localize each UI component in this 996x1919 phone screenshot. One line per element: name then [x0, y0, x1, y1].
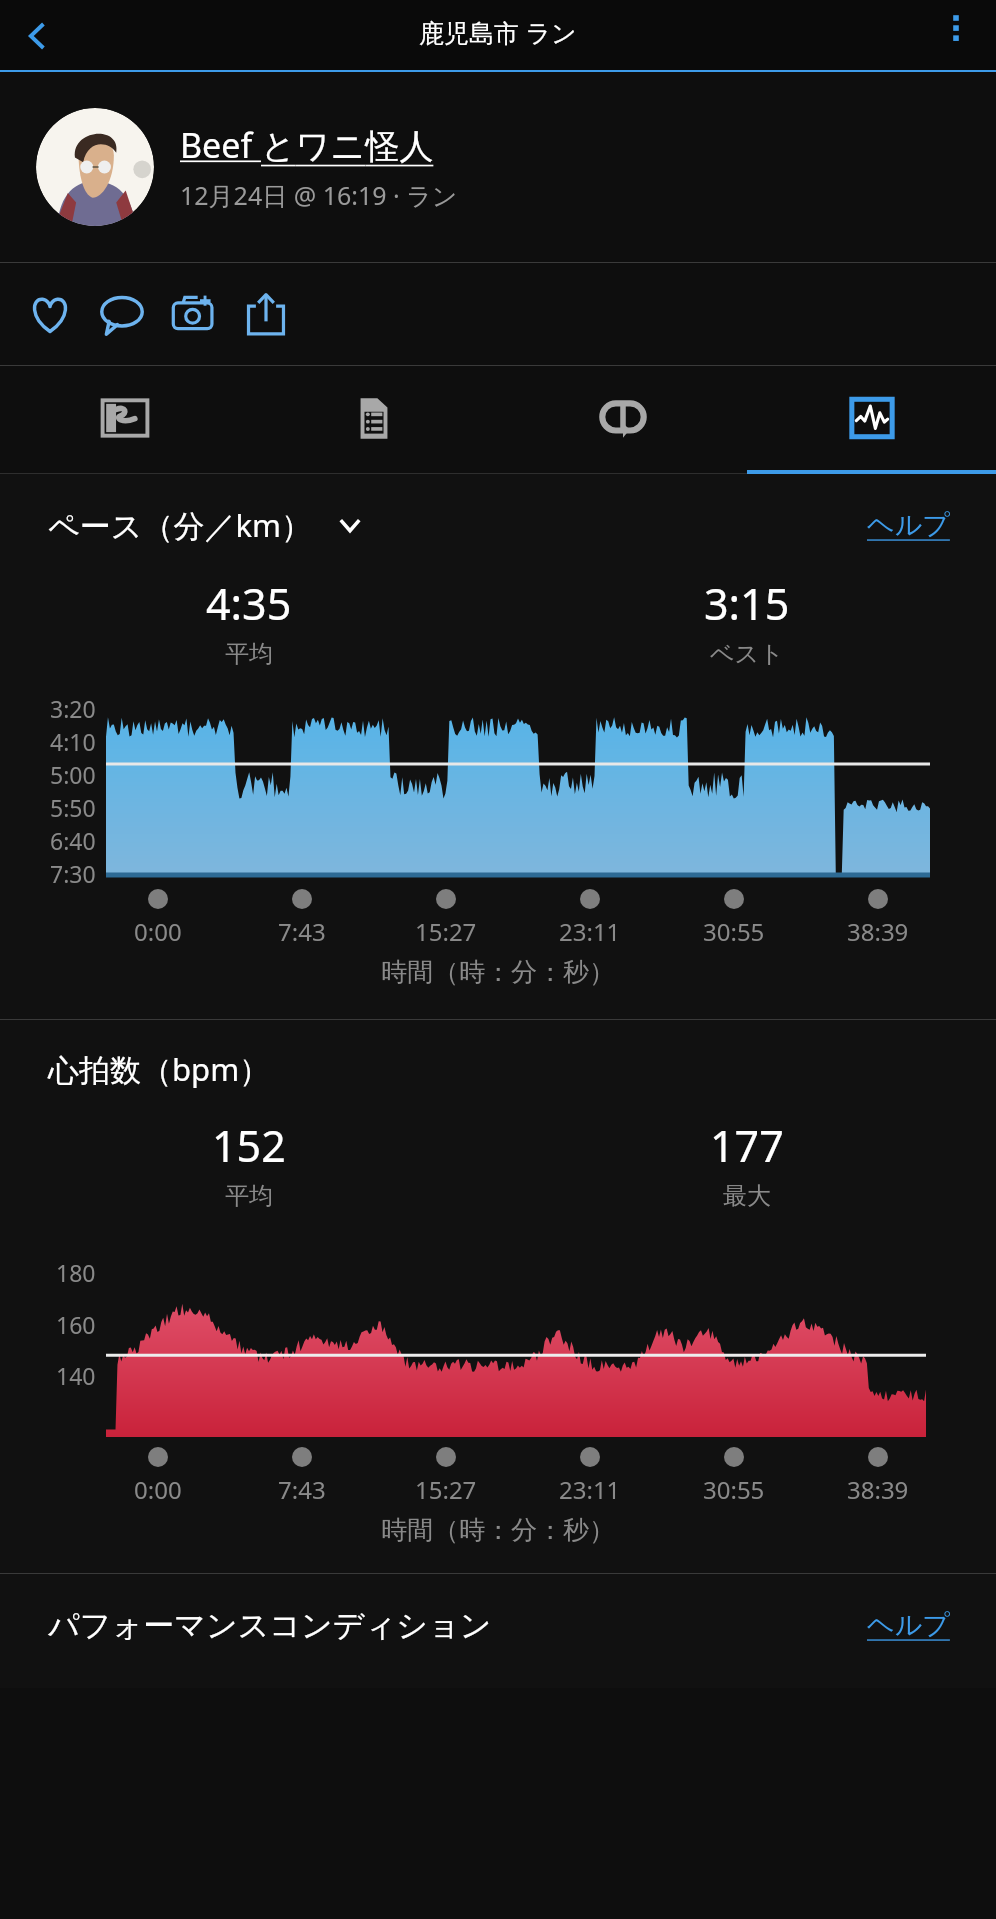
staticText: ヘルプ [867, 1608, 950, 1642]
button[interactable]: Details [249, 366, 498, 474]
staticText: 15:27 [415, 1473, 477, 1506]
staticText: 最大 [723, 1181, 771, 1211]
staticText: 4:10 [50, 726, 96, 757]
button[interactable]: Change metric [330, 505, 370, 545]
staticText: 38:39 [847, 1473, 909, 1506]
staticText: 心拍数（bpm） [48, 1048, 271, 1090]
staticText: Beef とワニ怪人 [180, 122, 434, 168]
staticText: 時間（時：分：秒） [0, 956, 996, 989]
button[interactable]: Map [0, 366, 249, 474]
staticText: 平均 [225, 639, 273, 669]
staticText: 7:43 [278, 1473, 326, 1506]
staticText: 平均 [225, 1181, 273, 1211]
staticText: ペース（分／km） [48, 504, 312, 546]
button[interactable]: ヘルプ [861, 502, 956, 548]
staticText: 140 [56, 1360, 96, 1391]
staticText: 180 [56, 1257, 96, 1288]
button[interactable]: Beef とワニ怪人 [0, 72, 996, 262]
staticText: 時間（時：分：秒） [0, 1514, 996, 1547]
button[interactable]: Laps [498, 366, 747, 474]
staticText: ベスト [710, 639, 784, 669]
button[interactable]: Share [230, 278, 302, 350]
staticText: 38:39 [847, 915, 909, 948]
staticText: 6:40 [50, 825, 96, 856]
staticText: 12月24日 @ 16:19 · ラン [180, 178, 458, 212]
staticText: 160 [56, 1309, 96, 1340]
staticText: 0:00 [134, 1473, 182, 1506]
staticText: 15:27 [415, 915, 477, 948]
button[interactable]: Comment [86, 278, 158, 350]
staticText: 30:55 [703, 1473, 765, 1506]
staticText: 152 [212, 1116, 286, 1175]
button[interactable]: ヘルプ [861, 1602, 956, 1648]
staticText: 0:00 [134, 915, 182, 948]
staticText: 7:30 [50, 858, 96, 889]
staticText: 23:11 [559, 1473, 621, 1506]
button[interactable]: Like [14, 278, 86, 350]
staticText: ヘルプ [867, 508, 950, 542]
staticText: 7:43 [278, 915, 326, 948]
staticText: 3:20 [50, 693, 96, 724]
staticText: 30:55 [703, 915, 765, 948]
button[interactable]: More options [924, 0, 988, 64]
staticText: 3:15 [704, 574, 790, 633]
staticText: 177 [710, 1116, 784, 1175]
staticText: 鹿児島市 ラン [419, 15, 577, 49]
staticText: パフォーマンスコンディション [48, 1606, 492, 1645]
staticText: 4:35 [206, 574, 292, 633]
staticText: 5:50 [50, 792, 96, 823]
button[interactable]: Add photo [158, 278, 230, 350]
staticText: 5:00 [50, 759, 96, 790]
staticText: 23:11 [559, 915, 621, 948]
button[interactable]: Charts [747, 366, 996, 474]
button[interactable]: Back [6, 4, 70, 68]
